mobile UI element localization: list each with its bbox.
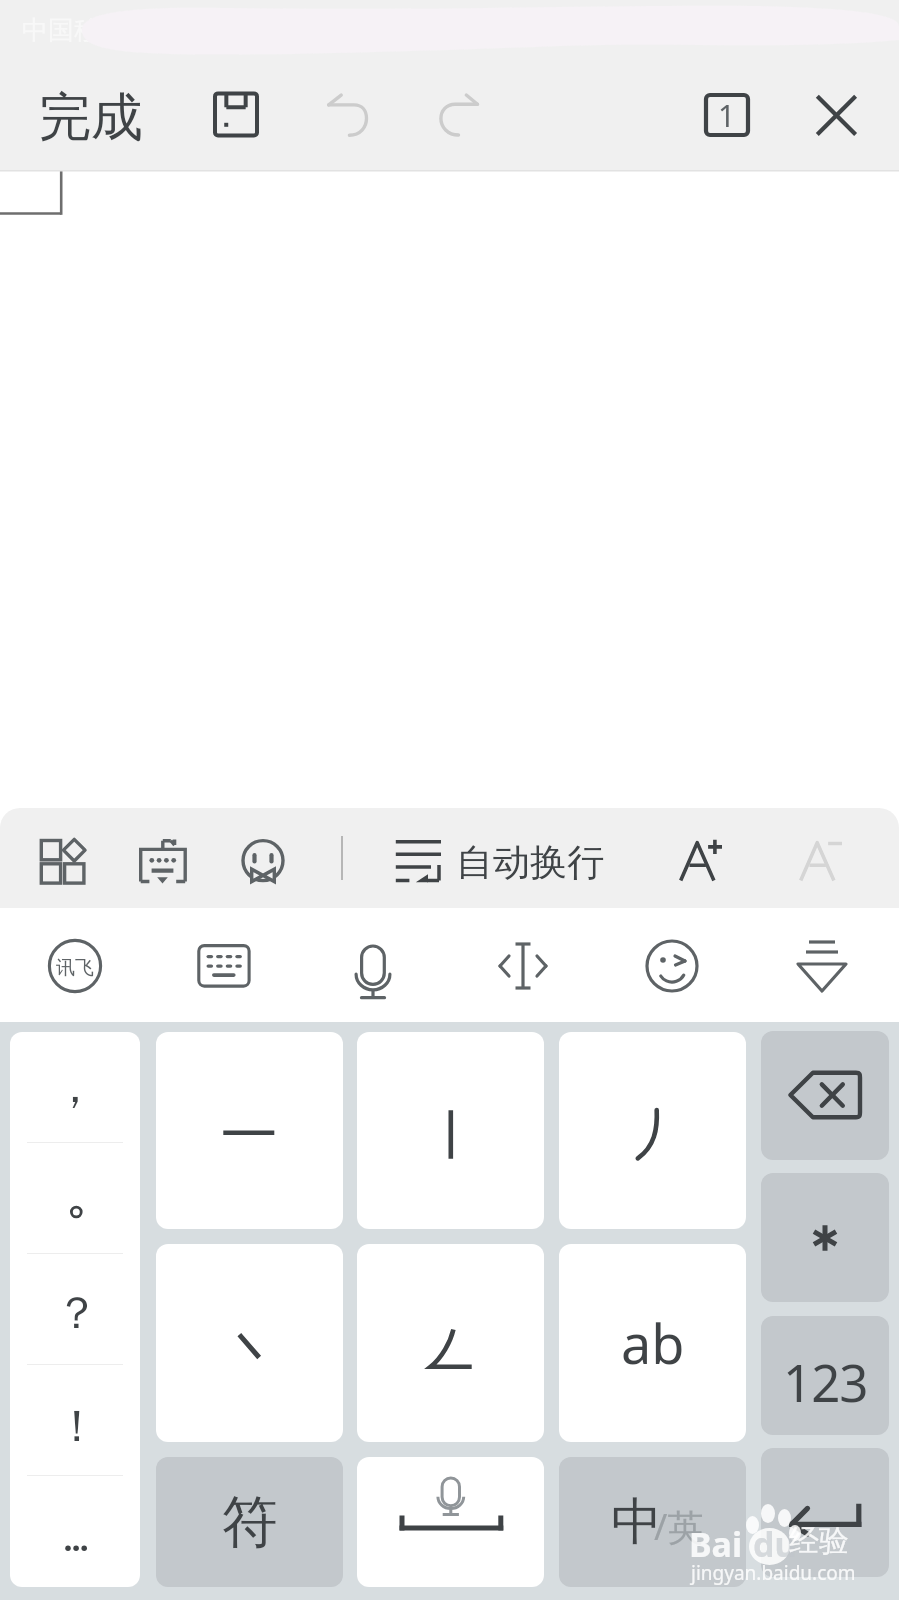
button[interactable]: Decrease font size: [774, 808, 864, 908]
button[interactable]: 中: [559, 1457, 746, 1587]
staticText: jingyan.baidu.com: [691, 1560, 856, 1586]
button[interactable]: Increase font size: [654, 808, 744, 908]
staticText: ，: [53, 1060, 97, 1115]
button[interactable]: Stroke zhe: [357, 1244, 544, 1442]
button[interactable]: Period: [10, 1143, 140, 1254]
button[interactable]: More punctuation: [10, 1476, 140, 1587]
staticText: 中: [611, 1490, 662, 1554]
staticText: ？: [55, 1286, 99, 1341]
button[interactable]: Assistant: [118, 808, 208, 908]
staticText: 完成: [39, 85, 143, 151]
button[interactable]: Question mark: [10, 1254, 140, 1365]
button[interactable]: Comma: [10, 1032, 140, 1143]
button[interactable]: Stroke dian: [156, 1244, 343, 1442]
staticText: 中国移动: [22, 14, 126, 47]
button[interactable]: Sticker: [218, 808, 308, 908]
button[interactable]: Stroke shu: [357, 1032, 544, 1229]
staticText: du: [753, 1521, 797, 1567]
staticText: 自动换行: [456, 839, 604, 886]
staticText: ！: [55, 1399, 99, 1454]
button[interactable]: 123: [761, 1316, 889, 1435]
button[interactable]: 符: [156, 1457, 343, 1587]
button[interactable]: Save: [190, 60, 280, 170]
staticText: 123: [783, 1347, 868, 1416]
staticText: ab: [621, 1306, 685, 1380]
button[interactable]: Apps: [18, 808, 108, 908]
staticText: 符: [222, 1487, 278, 1558]
button[interactable]: Hide keyboard: [762, 908, 882, 1022]
button[interactable]: Space: [357, 1457, 544, 1587]
button[interactable]: Asterisk: [761, 1173, 889, 1302]
button[interactable]: 1: [682, 60, 772, 170]
button[interactable]: Close: [792, 60, 882, 170]
button[interactable]: 自动换行: [380, 808, 620, 908]
button[interactable]: Stroke pie: [559, 1032, 746, 1229]
button[interactable]: Emoji: [612, 908, 732, 1022]
button[interactable]: Backspace: [761, 1031, 889, 1160]
button[interactable]: Input method: [15, 908, 135, 1022]
button[interactable]: Keyboard: [164, 908, 284, 1022]
button[interactable]: Exclamation mark: [10, 1365, 140, 1476]
button[interactable]: Redo: [410, 60, 500, 170]
button[interactable]: ab: [559, 1244, 746, 1442]
button[interactable]: Enter: [761, 1448, 889, 1577]
staticText: 经验: [789, 1522, 849, 1560]
staticText: 讯飞: [56, 956, 94, 980]
staticText: 1: [718, 95, 736, 136]
staticText: Bai: [689, 1521, 743, 1567]
button[interactable]: Cursor: [463, 908, 583, 1022]
staticText: /英: [654, 1502, 704, 1551]
button[interactable]: Stroke heng: [156, 1032, 343, 1229]
button[interactable]: Voice input: [313, 908, 433, 1022]
button[interactable]: Undo: [300, 60, 390, 170]
button[interactable]: 完成: [16, 63, 166, 173]
